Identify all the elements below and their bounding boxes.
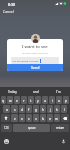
button[interactable]: m xyxy=(54,114,60,122)
staticText: d xyxy=(21,107,24,112)
staticText: i xyxy=(52,98,53,103)
button[interactable]: i xyxy=(49,96,55,104)
staticText: z xyxy=(14,116,16,121)
staticText: 123 xyxy=(4,126,9,130)
staticText: 8:30 xyxy=(8,2,16,7)
button[interactable]: h xyxy=(40,105,46,113)
staticText: j xyxy=(50,107,51,112)
button[interactable]: n xyxy=(47,114,53,122)
staticText: n xyxy=(49,116,52,121)
staticText: w xyxy=(9,98,12,103)
staticText: You are letting us know xyxy=(12,59,39,62)
staticText: t xyxy=(30,98,32,103)
staticText: v xyxy=(35,116,37,121)
staticText: a xyxy=(6,107,8,112)
button[interactable]: u xyxy=(42,96,48,104)
staticText: Cancel xyxy=(3,9,14,14)
button[interactable]: x xyxy=(19,114,25,122)
staticText: q xyxy=(2,98,5,103)
staticText: g xyxy=(35,107,38,112)
button[interactable]: v xyxy=(33,114,39,122)
staticText: c xyxy=(28,116,30,121)
button[interactable]: Shift xyxy=(1,114,10,122)
button[interactable]: and xyxy=(24,87,47,96)
button[interactable]: a xyxy=(3,105,10,113)
staticText: f xyxy=(28,107,30,112)
button[interactable]: c xyxy=(26,114,32,122)
staticText: space xyxy=(28,126,36,130)
button[interactable]: r xyxy=(21,96,27,104)
staticText: return xyxy=(56,126,65,130)
staticText: o xyxy=(58,98,61,103)
staticText: k xyxy=(56,107,58,112)
staticText: Tell them what you'd love xyxy=(22,52,48,55)
staticText: u xyxy=(44,98,47,103)
staticText: and xyxy=(33,90,39,94)
button[interactable]: b xyxy=(40,114,46,122)
button[interactable]: space xyxy=(13,124,50,132)
button[interactable]: o xyxy=(56,96,62,104)
staticText: r xyxy=(23,98,25,103)
button[interactable]: w xyxy=(7,96,13,104)
staticText: I want to see xyxy=(22,44,48,50)
button[interactable]: y xyxy=(35,96,41,104)
staticText: b xyxy=(42,116,45,121)
button[interactable]: s xyxy=(11,105,18,113)
staticText: h xyxy=(42,107,45,112)
button[interactable]: 123 xyxy=(1,124,12,132)
button[interactable]: Voice input xyxy=(61,139,66,144)
button[interactable]: Cancel xyxy=(1,8,16,15)
button[interactable]: Backspace xyxy=(61,114,69,122)
button[interactable]: Profile photo xyxy=(31,34,40,43)
button[interactable]: f xyxy=(26,105,32,113)
button[interactable]: z xyxy=(11,114,18,122)
button[interactable]: You are letting us know xyxy=(11,57,59,64)
staticText: Send xyxy=(31,65,40,70)
button[interactable]: j xyxy=(47,105,53,113)
button[interactable]: t xyxy=(28,96,34,104)
staticText: I'm xyxy=(56,90,61,94)
button[interactable]: g xyxy=(33,105,39,113)
staticText: p xyxy=(65,98,68,103)
button[interactable]: Today xyxy=(0,87,24,96)
button[interactable]: q xyxy=(1,96,6,104)
staticText: x xyxy=(21,116,23,121)
button[interactable]: p xyxy=(63,96,69,104)
button[interactable]: return xyxy=(51,124,69,132)
button[interactable]: d xyxy=(19,105,25,113)
button[interactable]: Emoji xyxy=(4,139,9,144)
staticText: y xyxy=(37,98,39,103)
staticText: l xyxy=(64,107,65,112)
staticText: s xyxy=(14,107,16,112)
button[interactable]: e xyxy=(14,96,20,104)
button[interactable]: k xyxy=(54,105,60,113)
staticText: e xyxy=(16,98,18,103)
staticText: Today xyxy=(8,90,17,94)
button[interactable]: I'm xyxy=(47,87,70,96)
button[interactable]: Send xyxy=(7,64,63,71)
staticText: m xyxy=(55,116,59,121)
button[interactable]: l xyxy=(61,105,67,113)
